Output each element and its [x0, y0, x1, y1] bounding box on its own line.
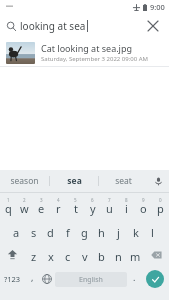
- staticText: l: [151, 225, 154, 240]
- staticText: 6: [91, 197, 94, 203]
- staticText: v: [82, 249, 88, 264]
- staticText: 3: [40, 197, 43, 203]
- button[interactable]: a: [8, 220, 25, 241]
- button[interactable]: 2: [16, 196, 33, 217]
- button[interactable]: j: [110, 220, 127, 241]
- staticText: Saturday, September 3 2022 09:00 AM: [41, 55, 149, 63]
- staticText: ?123: [4, 274, 21, 284]
- staticText: s: [31, 225, 37, 240]
- button[interactable]: h: [93, 220, 110, 241]
- staticText: p: [157, 201, 164, 216]
- button[interactable]: 0: [152, 196, 169, 217]
- button[interactable]: Clear search: [143, 16, 163, 36]
- button[interactable]: 5: [67, 196, 84, 217]
- button[interactable]: sea: [50, 170, 98, 192]
- button[interactable]: f: [59, 220, 76, 241]
- button[interactable]: 7: [101, 196, 118, 217]
- staticText: i: [125, 201, 128, 216]
- staticText: z: [31, 249, 37, 264]
- staticText: c: [65, 249, 71, 264]
- button[interactable]: n: [110, 244, 127, 265]
- button[interactable]: English: [55, 272, 127, 287]
- staticText: o: [140, 201, 147, 216]
- button[interactable]: v: [76, 244, 93, 265]
- button[interactable]: Change language: [39, 268, 55, 290]
- staticText: x: [48, 249, 54, 264]
- button[interactable]: ,: [25, 268, 39, 290]
- staticText: f: [66, 225, 70, 240]
- button[interactable]: x: [42, 244, 59, 265]
- staticText: .: [133, 271, 136, 283]
- staticText: 5: [74, 197, 77, 203]
- staticText: t: [74, 201, 78, 216]
- button[interactable]: season: [0, 170, 49, 192]
- button[interactable]: 9: [135, 196, 152, 217]
- staticText: a: [13, 225, 20, 240]
- button[interactable]: .: [127, 268, 141, 290]
- staticText: 7: [108, 197, 111, 203]
- staticText: 2: [23, 197, 26, 203]
- staticText: r: [56, 201, 61, 216]
- staticText: k: [133, 225, 139, 240]
- staticText: looking at sea: [20, 19, 86, 33]
- button[interactable]: d: [42, 220, 59, 241]
- staticText: sea: [67, 175, 82, 187]
- staticText: u: [106, 201, 113, 216]
- button[interactable]: Cat looking at sea.jpg: [0, 39, 169, 66]
- staticText: b: [98, 249, 105, 264]
- staticText: 9: [142, 197, 145, 203]
- staticText: season: [10, 175, 39, 187]
- staticText: d: [47, 225, 54, 240]
- staticText: e: [38, 201, 45, 216]
- staticText: n: [115, 249, 122, 264]
- button[interactable]: k: [127, 220, 144, 241]
- button[interactable]: s: [25, 220, 42, 241]
- staticText: ,: [31, 271, 34, 283]
- staticText: q: [5, 201, 12, 216]
- staticText: h: [98, 225, 105, 240]
- button[interactable]: Voice input: [147, 170, 169, 192]
- button[interactable]: Shift: [0, 244, 25, 265]
- button[interactable]: 8: [118, 196, 135, 217]
- staticText: Cat looking at sea.jpg: [41, 42, 132, 54]
- staticText: y: [90, 201, 96, 216]
- staticText: 9:00: [150, 2, 165, 12]
- staticText: 8: [125, 197, 128, 203]
- staticText: m: [130, 249, 141, 264]
- button[interactable]: z: [25, 244, 42, 265]
- button[interactable]: Done: [146, 270, 164, 288]
- staticText: 4: [57, 197, 60, 203]
- button[interactable]: 4: [50, 196, 67, 217]
- button[interactable]: g: [76, 220, 93, 241]
- button[interactable]: c: [59, 244, 76, 265]
- staticText: English: [79, 275, 103, 285]
- button[interactable]: l: [144, 220, 161, 241]
- button[interactable]: ?123: [0, 268, 25, 290]
- button[interactable]: 6: [84, 196, 101, 217]
- staticText: j: [117, 225, 120, 240]
- staticText: w: [20, 201, 29, 216]
- staticText: g: [81, 225, 88, 240]
- button[interactable]: Backspace: [144, 244, 169, 265]
- button[interactable]: seat: [99, 170, 147, 192]
- staticText: 0: [159, 197, 162, 203]
- staticText: seat: [115, 175, 132, 187]
- button[interactable]: b: [93, 244, 110, 265]
- button[interactable]: 1: [0, 196, 16, 217]
- button[interactable]: m: [127, 244, 144, 265]
- other: Search: [6, 21, 17, 32]
- button[interactable]: 3: [33, 196, 50, 217]
- staticText: 1: [7, 197, 10, 203]
